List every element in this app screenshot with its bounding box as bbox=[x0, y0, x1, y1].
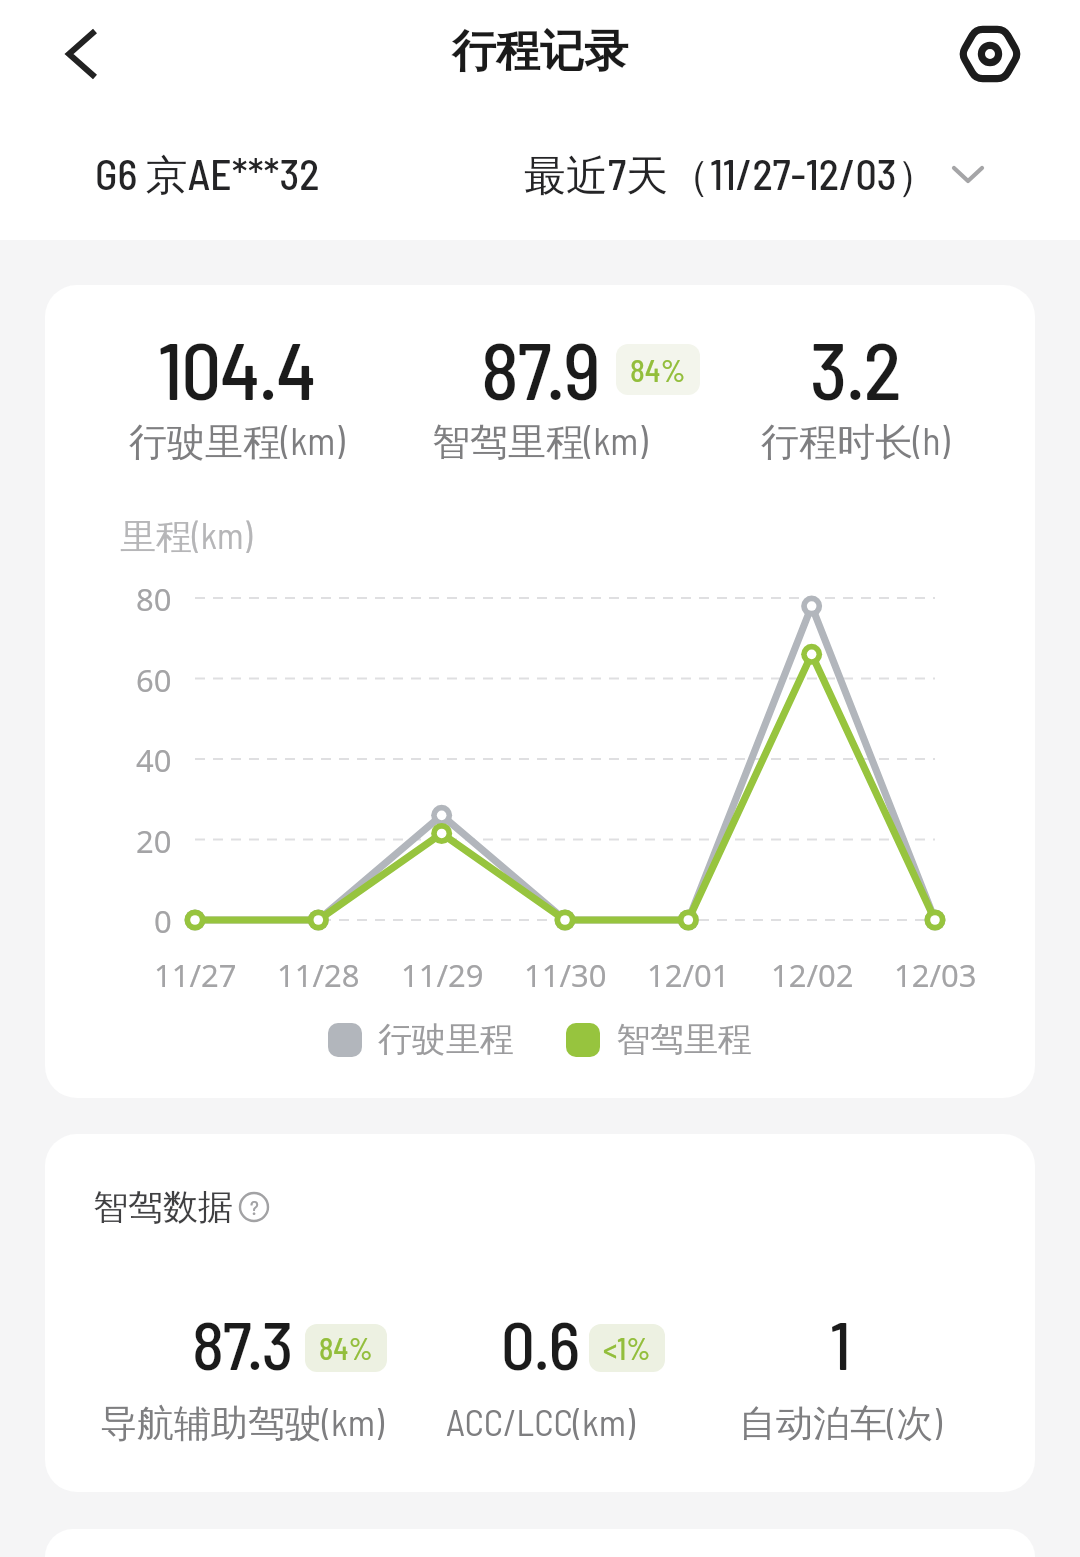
staticText: 87.9 bbox=[481, 321, 600, 401]
staticText: G6 京AE***32 bbox=[95, 148, 320, 202]
staticText: 3.2 bbox=[810, 321, 901, 401]
staticText: 导航辅助驾驶(km) bbox=[100, 1399, 384, 1447]
staticText: 11/27 bbox=[154, 954, 237, 996]
staticText: 12/03 bbox=[894, 954, 977, 996]
button[interactable]: ? bbox=[239, 1192, 269, 1222]
staticText: 智驾里程 bbox=[616, 1018, 752, 1061]
staticText: ? bbox=[250, 1195, 259, 1219]
staticText: <1% bbox=[603, 1330, 651, 1366]
staticText: ACC/LCC(km) bbox=[446, 1399, 635, 1443]
staticText: 40 bbox=[136, 739, 172, 779]
button[interactable]: 最近7天（11/27-12/03） bbox=[524, 148, 985, 202]
staticText: 行程记录 bbox=[452, 24, 628, 79]
staticText: 20 bbox=[136, 820, 172, 860]
staticText: 0.6 bbox=[501, 1303, 579, 1377]
staticText: 行驶里程(km) bbox=[129, 417, 345, 466]
staticText: 行驶里程 bbox=[378, 1018, 514, 1061]
staticText: 1 bbox=[830, 1303, 850, 1377]
button[interactable] bbox=[950, 12, 1030, 96]
staticText: 104.4 bbox=[158, 321, 316, 401]
staticText: 84% bbox=[630, 351, 686, 388]
staticText: 智驾里程(km) bbox=[432, 417, 648, 466]
staticText: 12/01 bbox=[647, 954, 730, 996]
staticText: 里程(km) bbox=[120, 513, 253, 557]
staticText: 0 bbox=[154, 900, 172, 940]
button[interactable] bbox=[48, 12, 114, 96]
staticText: 自动泊车(次) bbox=[739, 1399, 942, 1447]
staticText: 87.3 bbox=[192, 1303, 293, 1377]
staticText: 最近7天（11/27-12/03） bbox=[524, 148, 939, 202]
staticText: 行程时长(h) bbox=[761, 417, 950, 466]
staticText: 12/02 bbox=[771, 954, 854, 996]
staticText: 11/28 bbox=[277, 954, 360, 996]
staticText: 60 bbox=[136, 659, 172, 699]
staticText: 11/29 bbox=[401, 954, 484, 996]
staticText: 80 bbox=[136, 578, 172, 618]
staticText: 智驾数据 bbox=[93, 1185, 233, 1229]
staticText: 11/30 bbox=[524, 954, 607, 996]
staticText: 84% bbox=[319, 1330, 373, 1366]
